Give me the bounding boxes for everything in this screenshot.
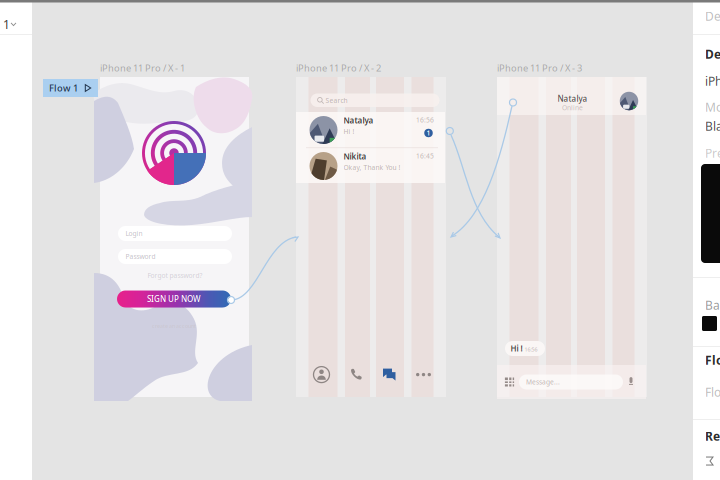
staticText: Black bbox=[705, 118, 720, 134]
staticText: 16:45 bbox=[416, 152, 434, 160]
button[interactable]: Calls bbox=[338, 362, 372, 388]
button[interactable]: Chats bbox=[372, 362, 406, 388]
staticText: create an account bbox=[152, 322, 196, 330]
staticText: Natalya bbox=[558, 93, 588, 104]
staticText: Rename bbox=[705, 428, 720, 444]
staticText: Flow 1 bbox=[705, 384, 720, 400]
staticText: Device bbox=[705, 46, 720, 62]
staticText: Forgot password? bbox=[147, 271, 202, 280]
staticText: Flow bbox=[705, 352, 720, 368]
staticText: Flow 1 bbox=[49, 82, 78, 94]
staticText: Hi ! bbox=[343, 127, 354, 136]
staticText: Nikita bbox=[343, 151, 366, 162]
button[interactable]: Contacts bbox=[304, 362, 338, 388]
staticText: 1 bbox=[3, 16, 10, 32]
staticText: iPhone 11 Pro / X bbox=[705, 73, 720, 89]
button[interactable]: More bbox=[406, 362, 440, 388]
staticText: Password bbox=[125, 252, 155, 261]
button[interactable]: Play Flow 1 bbox=[43, 79, 98, 97]
staticText: 16:56 bbox=[416, 116, 434, 124]
staticText: Online bbox=[562, 103, 583, 112]
staticText: 16:56 bbox=[524, 346, 537, 353]
button[interactable]: Nikita bbox=[296, 148, 445, 184]
button[interactable]: SIGN UP NOW bbox=[117, 290, 231, 307]
staticText: Search bbox=[325, 96, 347, 105]
staticText: Preview bbox=[705, 145, 720, 161]
staticText: iPhone 11 Pro / X - 1 bbox=[100, 62, 185, 74]
staticText: Background bbox=[705, 297, 720, 313]
button[interactable]: Natalya bbox=[296, 112, 445, 148]
staticText: iPhone 11 Pro / X - 3 bbox=[497, 62, 582, 74]
staticText: Design bbox=[705, 8, 720, 24]
staticText: Okay, Thank You ! bbox=[343, 163, 400, 172]
staticText: 1 bbox=[426, 129, 430, 137]
staticText: Message... bbox=[526, 378, 560, 386]
staticText: Login bbox=[125, 229, 142, 238]
button[interactable]: Page 1 bbox=[0, 7, 28, 27]
staticText: iPhone 11 Pro / X - 2 bbox=[296, 62, 381, 74]
staticText: Natalya bbox=[343, 115, 373, 126]
staticText: Model bbox=[705, 99, 720, 115]
staticText: Hi ! bbox=[510, 343, 522, 354]
staticText: SIGN UP NOW bbox=[147, 294, 201, 304]
